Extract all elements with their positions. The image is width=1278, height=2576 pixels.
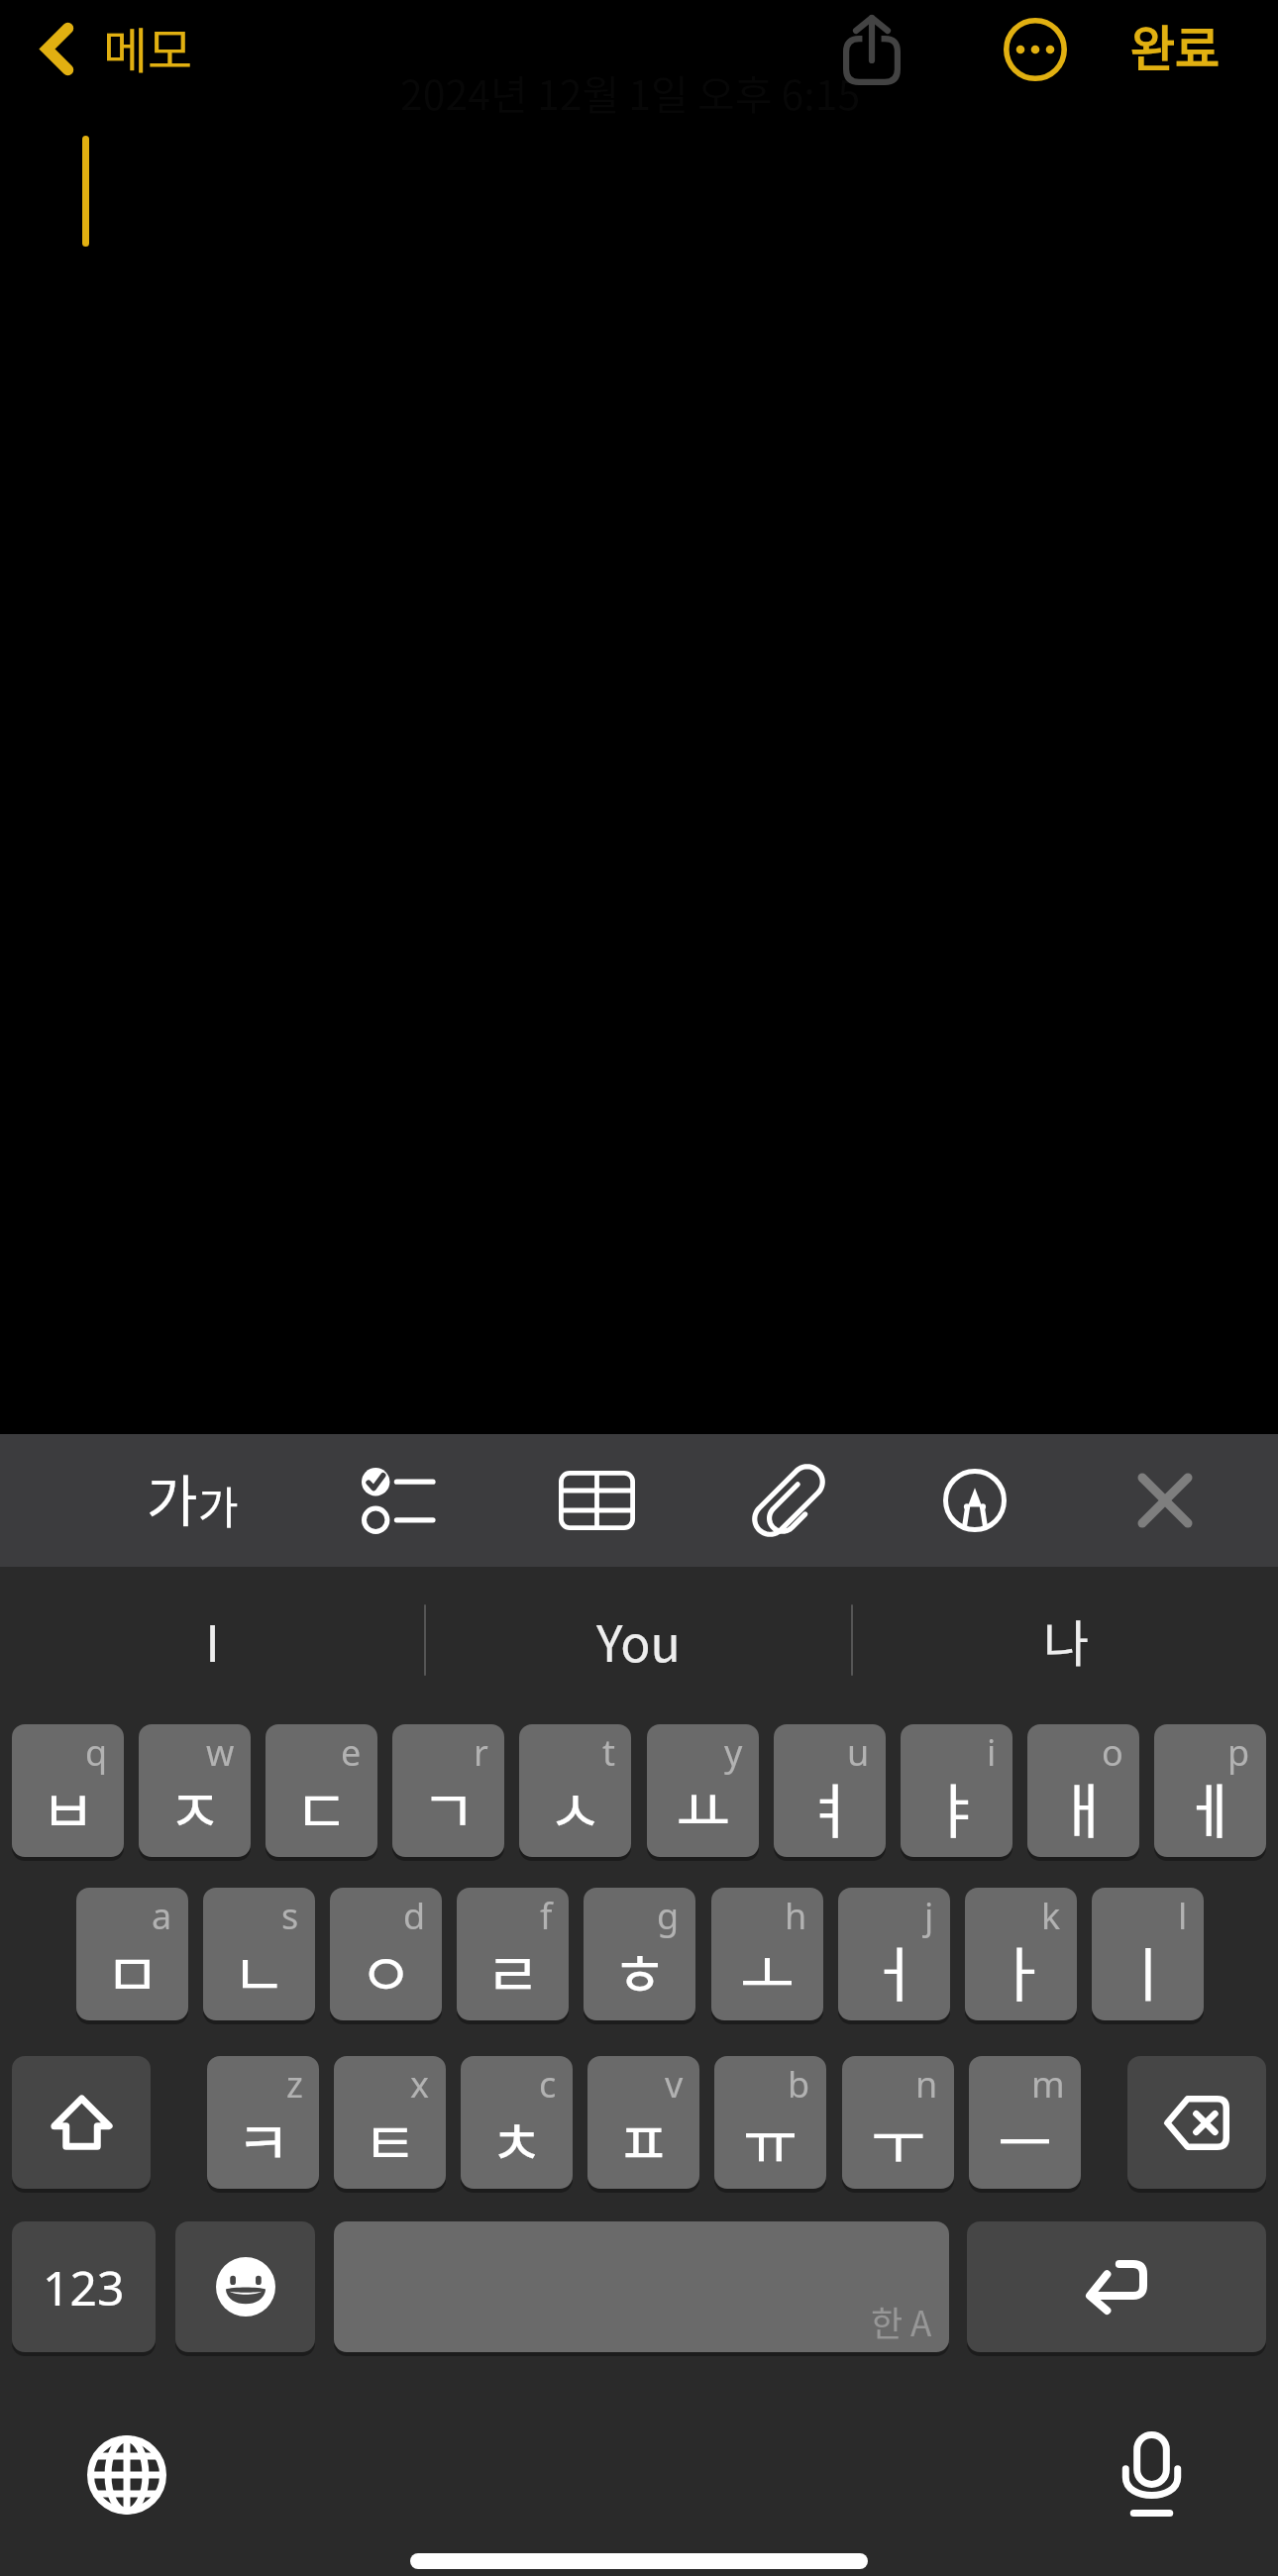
staticText: ㅈ bbox=[167, 1764, 223, 1850]
button[interactable]: z bbox=[207, 2056, 319, 2189]
staticText: w bbox=[206, 1728, 235, 1777]
button[interactable]: p bbox=[1154, 1724, 1266, 1857]
button[interactable]: v bbox=[587, 2056, 699, 2189]
button[interactable]: h bbox=[711, 1888, 823, 2020]
button[interactable]: 완료 bbox=[1118, 0, 1232, 94]
staticText: ㅓ bbox=[867, 1927, 922, 2013]
button[interactable]: Numbers bbox=[12, 2221, 156, 2352]
staticText: ㅋ bbox=[236, 2096, 291, 2182]
staticText: 메모 bbox=[103, 12, 193, 82]
button[interactable]: d bbox=[330, 1888, 442, 2020]
staticText: z bbox=[286, 2060, 303, 2109]
staticText: ㅏ bbox=[994, 1927, 1049, 2013]
staticText: t bbox=[602, 1728, 615, 1777]
staticText: ㅜ bbox=[871, 2096, 926, 2182]
button[interactable]: Share bbox=[820, 2, 923, 97]
button[interactable]: m bbox=[969, 2056, 1081, 2189]
staticText: l bbox=[1178, 1892, 1188, 1940]
button[interactable]: Change keyboard bbox=[72, 2421, 181, 2529]
button[interactable]: Shift bbox=[12, 2056, 151, 2189]
staticText: b bbox=[788, 2060, 810, 2109]
button[interactable]: u bbox=[774, 1724, 886, 1857]
button[interactable]: 메모 bbox=[97, 0, 199, 96]
staticText: ㅅ bbox=[548, 1764, 603, 1850]
button[interactable]: a bbox=[76, 1888, 188, 2020]
button[interactable]: q bbox=[12, 1724, 124, 1857]
staticText: j bbox=[924, 1892, 934, 1940]
button[interactable]: Close toolbar bbox=[1102, 1434, 1228, 1567]
staticText: p bbox=[1227, 1728, 1250, 1777]
staticText: ㅎ bbox=[612, 1927, 668, 2013]
staticText: m bbox=[1031, 2060, 1065, 2109]
staticText: 한 A bbox=[871, 2296, 932, 2346]
button[interactable]: c bbox=[461, 2056, 573, 2189]
staticText: q bbox=[85, 1728, 108, 1777]
staticText: ㅛ bbox=[676, 1764, 731, 1850]
button[interactable]: Markup bbox=[911, 1434, 1038, 1567]
button[interactable]: Text format bbox=[129, 1434, 256, 1567]
staticText: ㄱ bbox=[421, 1764, 477, 1850]
button[interactable]: y bbox=[647, 1724, 759, 1857]
staticText: y bbox=[724, 1728, 743, 1777]
button[interactable]: s bbox=[203, 1888, 315, 2020]
staticText: k bbox=[1041, 1892, 1061, 1940]
button[interactable]: Table bbox=[533, 1434, 660, 1567]
button[interactable]: Return bbox=[967, 2221, 1266, 2352]
button[interactable]: Dictate bbox=[1097, 2420, 1206, 2528]
button[interactable]: Delete bbox=[1127, 2056, 1266, 2189]
staticText: ㄹ bbox=[485, 1927, 541, 2013]
button[interactable]: l bbox=[1092, 1888, 1204, 2020]
button[interactable]: I bbox=[0, 1578, 424, 1701]
staticText: 123 bbox=[43, 2255, 125, 2319]
staticText: e bbox=[341, 1728, 362, 1777]
staticText: ㅕ bbox=[802, 1764, 858, 1850]
staticText: ㅗ bbox=[740, 1927, 796, 2013]
button[interactable]: b bbox=[714, 2056, 826, 2189]
staticText: ㅠ bbox=[743, 2096, 799, 2182]
staticText: x bbox=[410, 2060, 430, 2109]
staticText: h bbox=[785, 1892, 807, 1940]
button[interactable]: w bbox=[139, 1724, 251, 1857]
staticText: d bbox=[403, 1892, 426, 1940]
button[interactable]: r bbox=[392, 1724, 504, 1857]
staticText: i bbox=[987, 1728, 997, 1777]
staticText: 가 bbox=[198, 1474, 239, 1537]
staticText: r bbox=[474, 1728, 488, 1777]
button[interactable]: k bbox=[965, 1888, 1077, 2020]
staticText: ㅣ bbox=[1120, 1927, 1176, 2013]
staticText: ㅁ bbox=[105, 1927, 160, 2013]
staticText: v bbox=[665, 2060, 684, 2109]
button[interactable]: Emoji bbox=[175, 2221, 315, 2352]
button[interactable]: 나 bbox=[853, 1578, 1278, 1701]
button[interactable]: j bbox=[838, 1888, 950, 2020]
staticText: ㅊ bbox=[489, 2096, 545, 2182]
staticText: ㅡ bbox=[998, 2096, 1053, 2182]
staticText: 가 bbox=[147, 1457, 198, 1537]
button[interactable]: g bbox=[584, 1888, 695, 2020]
staticText: I bbox=[205, 1604, 220, 1676]
staticText: a bbox=[152, 1892, 172, 1940]
button[interactable]: o bbox=[1027, 1724, 1139, 1857]
button[interactable]: Note body bbox=[0, 109, 1278, 1434]
button[interactable]: Attach file bbox=[725, 1434, 852, 1567]
button[interactable]: e bbox=[266, 1724, 377, 1857]
button[interactable]: x bbox=[334, 2056, 446, 2189]
staticText: n bbox=[915, 2060, 938, 2109]
staticText: ㅌ bbox=[363, 2096, 418, 2182]
button[interactable]: i bbox=[901, 1724, 1012, 1857]
button[interactable]: Checklist bbox=[334, 1434, 461, 1567]
button[interactable]: n bbox=[842, 2056, 954, 2189]
button[interactable]: You bbox=[426, 1578, 851, 1701]
staticText: ㅂ bbox=[41, 1764, 96, 1850]
staticText: 2024년 12월 1일 오후 6:15 bbox=[400, 62, 861, 121]
button[interactable]: Back to notes bbox=[14, 4, 105, 99]
staticText: ㅐ bbox=[1056, 1764, 1112, 1850]
staticText: 나 bbox=[1043, 1604, 1089, 1676]
staticText: ㅑ bbox=[929, 1764, 985, 1850]
button[interactable]: f bbox=[457, 1888, 569, 2020]
button[interactable]: Space bbox=[334, 2221, 949, 2352]
staticText: o bbox=[1102, 1728, 1123, 1777]
staticText: ㄴ bbox=[232, 1927, 287, 2013]
button[interactable]: t bbox=[519, 1724, 631, 1857]
button[interactable]: More options bbox=[984, 0, 1087, 101]
